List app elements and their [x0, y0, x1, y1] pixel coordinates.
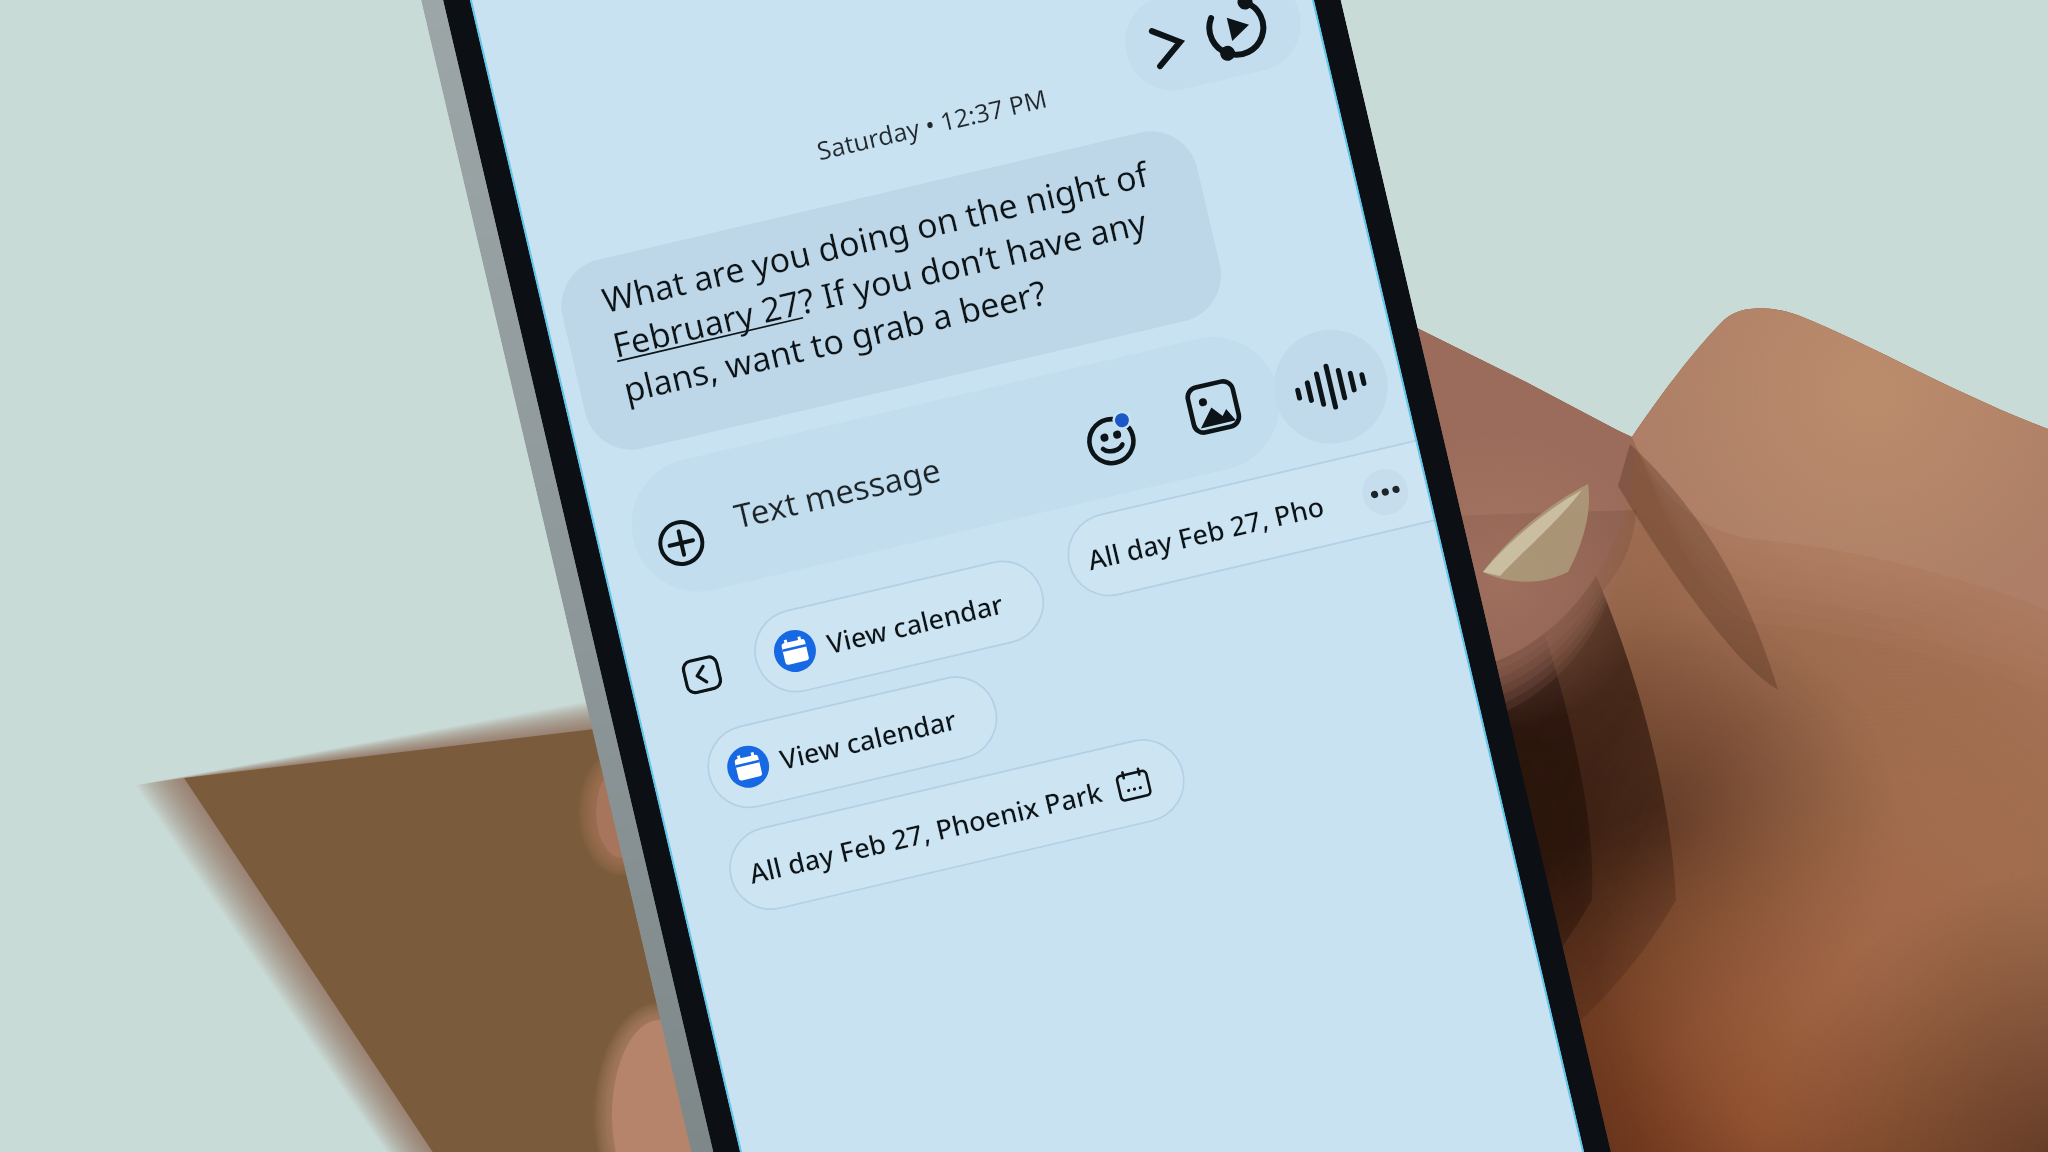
button[interactable]: Text message input	[618, 323, 1293, 605]
staticText: View calendar	[823, 585, 1007, 662]
staticText: All day Feb 27, Phoenix Park	[745, 773, 1106, 892]
button[interactable]: All day Feb 27, Pho	[1059, 439, 1436, 605]
staticText: What are you doing on the night of	[598, 150, 1152, 323]
button[interactable]: More options	[1358, 464, 1413, 520]
staticText: plans, want to grab a beer?	[619, 269, 1051, 413]
button[interactable]: All day Feb 27, Phoenix Park	[720, 730, 1193, 919]
button[interactable]: What are you doing on the night of	[552, 122, 1231, 459]
button[interactable]: Gallery	[1182, 376, 1245, 438]
button[interactable]: View calendar	[699, 668, 1006, 817]
button[interactable]: Back	[679, 653, 725, 697]
button[interactable]: Voice message	[1262, 318, 1399, 455]
button[interactable]: Play	[1115, 0, 1311, 100]
button[interactable]: Add	[654, 515, 709, 571]
staticText: Saturday • 12:37 PM	[813, 80, 1050, 167]
staticText: All day Feb 27, Pho	[1084, 487, 1328, 578]
staticText: View calendar	[776, 700, 960, 778]
staticText: ? If you don’t have any	[794, 198, 1151, 324]
staticText: February 27	[608, 279, 805, 368]
button[interactable]: Emoji	[1080, 404, 1146, 473]
staticText: Text message	[730, 447, 945, 538]
button[interactable]: View calendar	[745, 552, 1053, 701]
